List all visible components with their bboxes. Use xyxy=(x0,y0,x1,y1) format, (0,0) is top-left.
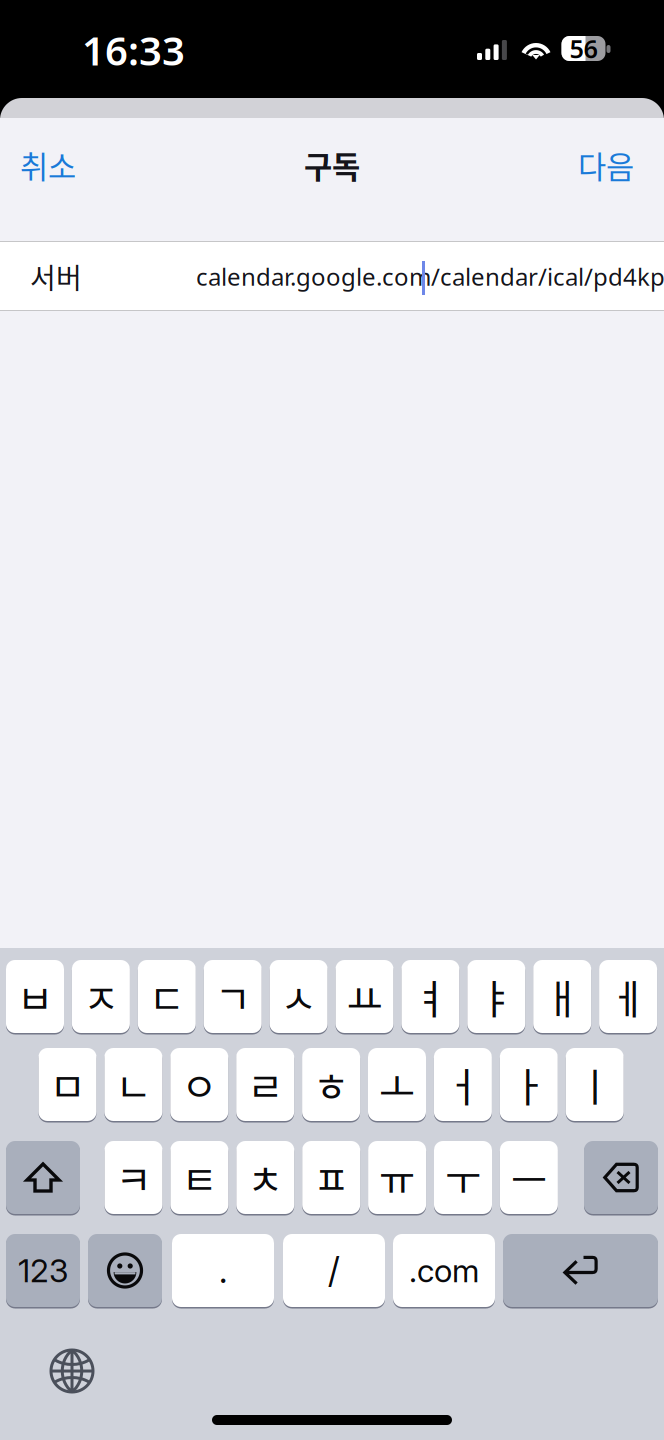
button[interactable]: ㅜ xyxy=(434,1139,492,1215)
button[interactable]: ㅎ xyxy=(302,1046,360,1122)
button[interactable]: ㅠ xyxy=(368,1139,426,1215)
staticText: ㅍ xyxy=(313,1149,349,1206)
button[interactable]: ㅍ xyxy=(302,1139,360,1215)
button[interactable]: 123 xyxy=(6,1232,80,1308)
button[interactable]: ㅁ xyxy=(38,1046,96,1122)
staticText: ㅔ xyxy=(610,968,646,1025)
button[interactable]: ㅅ xyxy=(270,958,328,1034)
staticText: ㄴ xyxy=(115,1056,151,1113)
staticText: ㄹ xyxy=(247,1056,283,1113)
staticText: ㅅ xyxy=(281,968,317,1025)
button[interactable]: Emoji xyxy=(88,1232,162,1308)
button[interactable]: ㅑ xyxy=(467,958,525,1034)
staticText: ㅜ xyxy=(445,1149,481,1206)
button[interactable]: ㅈ xyxy=(72,958,130,1034)
button[interactable]: ㅐ xyxy=(533,958,591,1034)
staticText: / xyxy=(328,1249,340,1291)
staticText: ㅋ xyxy=(115,1149,151,1206)
staticText: 취소 xyxy=(20,143,76,187)
staticText: 다음 xyxy=(578,143,634,187)
button[interactable]: / xyxy=(283,1232,385,1308)
button[interactable]: Return xyxy=(503,1232,658,1308)
staticText: 구독 xyxy=(304,143,360,187)
button[interactable]: ㅂ xyxy=(6,958,64,1034)
staticText: 16:33 xyxy=(82,23,185,76)
button[interactable]: Change keyboard xyxy=(47,1346,97,1396)
staticText: ㅡ xyxy=(511,1149,547,1206)
staticText: ㅐ xyxy=(544,968,580,1025)
button[interactable]: ㅊ xyxy=(236,1139,294,1215)
button[interactable]: 다음 xyxy=(514,141,634,189)
button[interactable]: ㄷ xyxy=(138,958,196,1034)
staticText: . xyxy=(219,1249,227,1291)
staticText: calendar.google.com/calendar/ical/pd4kp xyxy=(196,261,664,292)
button[interactable]: ㅛ xyxy=(335,958,393,1034)
staticText: ㅈ xyxy=(83,968,119,1025)
button[interactable]: Delete xyxy=(584,1139,658,1215)
button[interactable]: ㅌ xyxy=(170,1139,228,1215)
button[interactable]: ㅇ xyxy=(170,1046,228,1122)
staticText: ㅌ xyxy=(181,1149,217,1206)
staticText: .com xyxy=(409,1251,479,1290)
button[interactable]: ㅔ xyxy=(599,958,657,1034)
staticText: ㄱ xyxy=(215,968,251,1025)
staticText: ㅎ xyxy=(313,1056,349,1113)
button[interactable]: ㅗ xyxy=(368,1046,426,1122)
button[interactable]: .com xyxy=(393,1232,495,1308)
button[interactable]: ㄱ xyxy=(204,958,262,1034)
staticText: ㅣ xyxy=(577,1056,613,1113)
staticText: 서버 xyxy=(30,256,82,297)
staticText: ㅊ xyxy=(247,1149,283,1206)
staticText: 56 xyxy=(569,32,597,65)
button[interactable]: ㅕ xyxy=(401,958,459,1034)
staticText: ㅗ xyxy=(379,1056,415,1113)
staticText: ㅂ xyxy=(17,968,53,1025)
button[interactable]: 취소 xyxy=(20,141,140,189)
button[interactable]: . xyxy=(172,1232,274,1308)
staticText: ㅠ xyxy=(379,1149,415,1206)
staticText: ㄷ xyxy=(149,968,185,1025)
staticText: ㅁ xyxy=(49,1056,85,1113)
staticText: ㅕ xyxy=(412,968,448,1025)
staticText: ㅏ xyxy=(511,1056,547,1113)
staticText: ㅓ xyxy=(445,1056,481,1113)
staticText: ㅇ xyxy=(181,1056,217,1113)
staticText: ㅑ xyxy=(478,968,514,1025)
button[interactable]: Shift xyxy=(6,1139,80,1215)
staticText: ㅛ xyxy=(346,968,382,1025)
button[interactable]: ㄴ xyxy=(104,1046,162,1122)
button[interactable]: ㅓ xyxy=(434,1046,492,1122)
staticText: 123 xyxy=(18,1251,68,1290)
button[interactable]: ㅏ xyxy=(500,1046,558,1122)
button[interactable]: ㅡ xyxy=(500,1139,558,1215)
button[interactable]: ㅋ xyxy=(104,1139,162,1215)
button[interactable]: ㅣ xyxy=(566,1046,624,1122)
button[interactable]: ㄹ xyxy=(236,1046,294,1122)
